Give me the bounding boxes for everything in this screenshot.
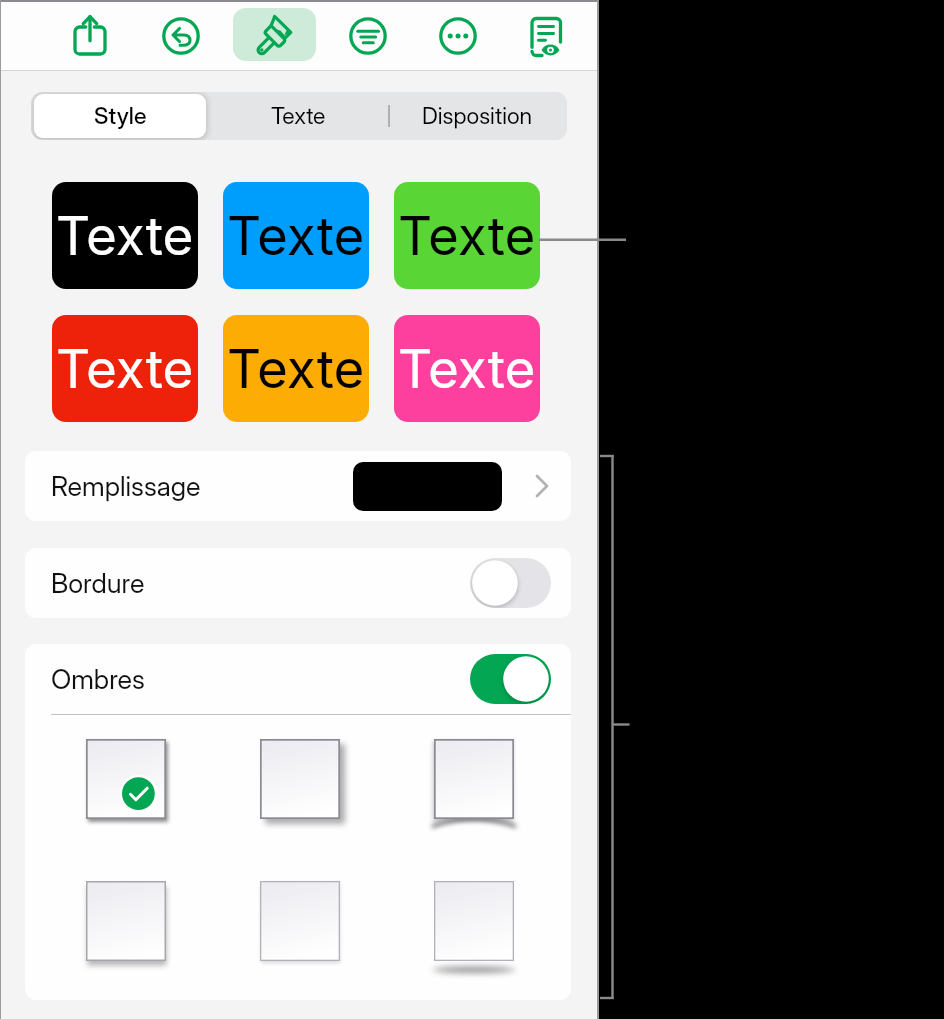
button[interactable]: Remplissage	[25, 451, 571, 521]
button[interactable]: Share	[60, 3, 120, 68]
staticText: Texte	[56, 204, 194, 268]
staticText: Remplissage	[51, 470, 201, 503]
button[interactable]: Texte	[223, 182, 369, 289]
button[interactable]: Insérer	[338, 3, 398, 68]
button[interactable]: Texte	[52, 315, 198, 422]
staticText: Texte	[398, 337, 536, 401]
button[interactable]: Disposition	[388, 92, 567, 140]
staticText: Texte	[227, 337, 365, 401]
staticText: Texte	[227, 204, 365, 268]
button[interactable]: Ombre 4	[74, 869, 178, 973]
staticText: Ombres	[51, 663, 145, 696]
staticText: Texte	[398, 204, 536, 268]
button[interactable]: Bordure	[25, 548, 571, 618]
button[interactable]: Plus	[428, 3, 488, 68]
button[interactable]: Ombre 6	[422, 869, 526, 973]
button[interactable]: Annuler	[151, 3, 211, 68]
staticText: Texte	[271, 102, 326, 130]
button[interactable]: Ombre 5	[248, 869, 352, 973]
button[interactable]: Ombre 1	[74, 727, 178, 831]
button[interactable]: Aperçu du document	[518, 3, 578, 68]
button[interactable]: Texte	[394, 182, 540, 289]
button[interactable]: Format	[244, 3, 304, 68]
button[interactable]: Texte	[52, 182, 198, 289]
button[interactable]: Ombres	[25, 644, 571, 714]
button[interactable]: Texte	[209, 92, 388, 140]
button[interactable]: Activé	[470, 654, 551, 704]
button[interactable]: Ombre 2	[248, 727, 352, 831]
button[interactable]: Ombre 3	[422, 727, 526, 831]
staticText: Style	[94, 102, 147, 130]
staticText: Disposition	[422, 102, 533, 130]
staticText: Bordure	[51, 567, 145, 600]
button[interactable]: Désactivé	[470, 558, 551, 608]
button[interactable]: Style	[34, 94, 206, 138]
button[interactable]: Texte	[394, 315, 540, 422]
staticText: Texte	[56, 337, 194, 401]
button[interactable]: Texte	[223, 315, 369, 422]
